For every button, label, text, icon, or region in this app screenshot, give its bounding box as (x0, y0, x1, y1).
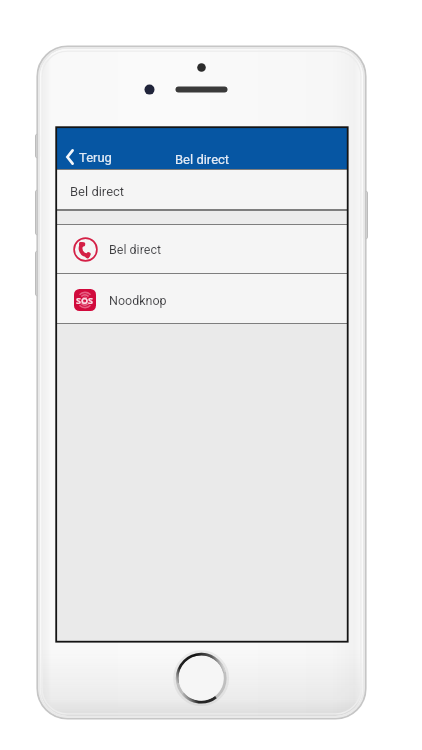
button[interactable]: SOS (57, 274, 347, 323)
staticText: Bel direct (109, 242, 162, 257)
staticText: Bel direct (70, 184, 125, 199)
staticText: Noodknop (109, 293, 167, 308)
staticText: SOS (76, 294, 94, 306)
button[interactable]: Bel direct (57, 225, 347, 273)
staticText: Terug (79, 150, 112, 165)
staticText: Bel direct (175, 152, 230, 167)
button[interactable]: Terug (62, 148, 122, 168)
